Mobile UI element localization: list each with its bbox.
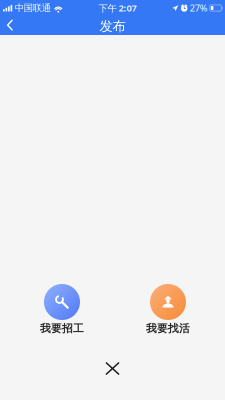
staticText: 发布 [99, 18, 125, 34]
button[interactable]: 我要找活 [146, 284, 190, 335]
staticText: 中国联通 [15, 2, 51, 14]
button[interactable]: 我要招工 [40, 284, 84, 335]
button[interactable]: Back [0, 16, 20, 35]
staticText: 27% [190, 2, 208, 14]
staticText: 我要找活 [146, 322, 190, 335]
staticText: 我要招工 [40, 322, 84, 335]
button[interactable]: Close [96, 353, 128, 384]
staticText: 下午 2:07 [99, 2, 137, 14]
